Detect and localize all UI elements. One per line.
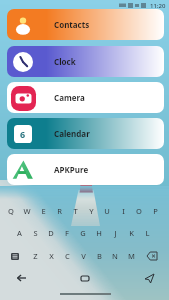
button[interactable]: APKPure [7,154,164,185]
staticText: Contacts [54,19,90,30]
staticText: E [41,206,46,216]
button[interactable]: Clock [7,46,164,77]
staticText: I [122,206,125,216]
staticText: C [65,251,70,261]
button[interactable]: J [107,225,123,241]
staticText: Clock [54,56,76,67]
button[interactable]: G [75,225,91,241]
staticText: APKPure [54,164,89,175]
button[interactable]: L [139,225,155,241]
staticText: G [80,228,86,238]
button[interactable]: K [123,225,139,241]
button[interactable]: Z [27,248,43,264]
button[interactable]: N [107,248,123,264]
staticText: R [57,206,62,216]
staticText: Calendar [54,128,90,139]
button[interactable]: T [67,203,83,219]
staticText: S [33,228,38,238]
staticText: U [104,206,110,216]
staticText: J [114,228,117,238]
staticText: 6 [20,128,26,140]
button[interactable]: U [99,203,115,219]
button[interactable]: O [131,203,147,219]
button[interactable]: B [91,248,107,264]
staticText: W [23,206,31,216]
button[interactable]: Q [3,203,19,219]
staticText: P [153,206,158,216]
staticText: M [128,251,135,261]
button[interactable]: S [27,225,43,241]
button[interactable]: P [147,203,163,219]
button[interactable]: Send [139,268,159,288]
button[interactable]: M [123,248,139,264]
staticText: B [97,251,102,261]
button[interactable]: R [51,203,67,219]
button[interactable]: H [91,225,107,241]
button[interactable]: Y [83,203,99,219]
staticText: L [145,228,150,238]
staticText: X [49,251,54,261]
button[interactable]: 6 [7,118,164,149]
button[interactable]: C [59,248,75,264]
button[interactable]: X [43,248,59,264]
button[interactable]: Back [11,268,31,288]
button[interactable]: Symbols [7,248,23,264]
button[interactable]: A [11,225,27,241]
staticText: N [112,251,118,261]
button[interactable]: D [43,225,59,241]
button[interactable]: E [35,203,51,219]
staticText: Z [33,251,38,261]
staticText: Y [89,206,94,216]
staticText: H [96,228,102,238]
staticText: O [136,206,142,216]
staticText: Q [8,206,14,216]
button[interactable]: V [75,248,91,264]
staticText: 11:20 [150,2,166,10]
button[interactable]: F [59,225,75,241]
button[interactable]: Backspace [144,248,160,264]
staticText: D [48,228,54,238]
staticText: Camera [54,92,85,103]
button[interactable]: Camera [7,82,164,113]
staticText: V [81,251,86,261]
staticText: F [65,228,69,238]
staticText: K [129,228,134,238]
button[interactable]: W [19,203,35,219]
button[interactable]: I [115,203,131,219]
staticText: T [73,206,78,216]
button[interactable]: Home [75,268,95,288]
button[interactable]: Contacts [7,9,164,40]
staticText: A [17,228,22,238]
